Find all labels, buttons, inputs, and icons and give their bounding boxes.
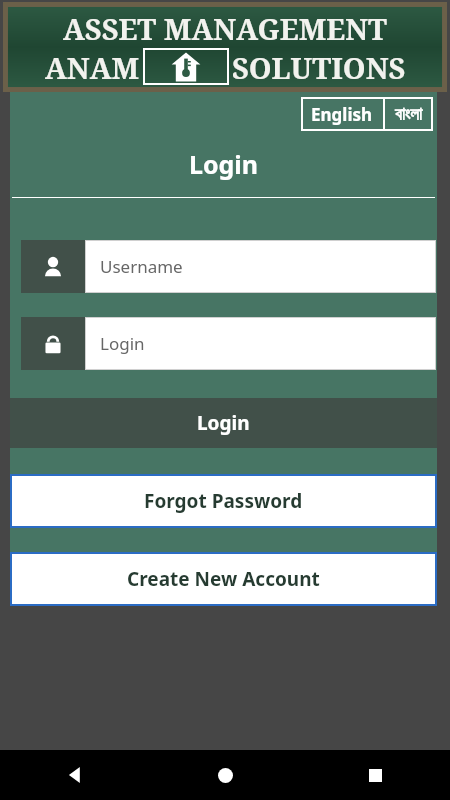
button[interactable]: English (301, 97, 383, 131)
button[interactable]: Login (10, 398, 437, 448)
staticText: Username (100, 255, 183, 278)
button[interactable]: Login (21, 317, 436, 370)
staticText: বাংলা (395, 106, 423, 123)
staticText: SOLUTIONS (232, 48, 406, 85)
staticText: Create New Account (127, 566, 320, 592)
other: Home (218, 768, 233, 783)
staticText: ASSET MANAGEMENT (17, 9, 433, 48)
staticText: Login (100, 332, 145, 355)
staticText: English (311, 103, 373, 126)
other: Back (67, 767, 83, 783)
staticText: Login (197, 410, 250, 436)
button[interactable]: Username (21, 240, 436, 293)
staticText: Login (10, 147, 437, 181)
button[interactable]: Forgot Password (10, 474, 437, 528)
button[interactable]: বাংলা (385, 97, 433, 131)
staticText: Forgot Password (144, 488, 303, 514)
staticText: ANAM (45, 48, 140, 85)
button[interactable]: Create New Account (10, 552, 437, 606)
